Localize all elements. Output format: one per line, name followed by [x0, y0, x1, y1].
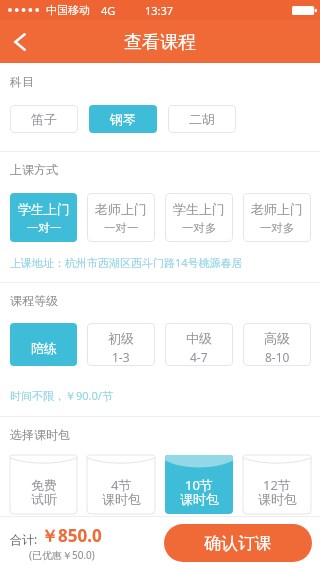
staticText: (已优惠￥50.0) [29, 548, 95, 562]
button[interactable]: 10节 [165, 455, 233, 514]
staticText: 10节 [185, 476, 213, 494]
staticText: 上课地址：杭州市西湖区西斗门路14号桃源春居 [10, 255, 243, 270]
staticText: 一对一 [104, 221, 139, 235]
staticText: 查看课程 [124, 31, 196, 54]
staticText: 一对多 [182, 221, 217, 235]
button[interactable]: 老师上门 [87, 193, 155, 242]
staticText: 13:37 [145, 3, 174, 18]
staticText: 选择课时包 [10, 427, 70, 442]
button[interactable]: 学生上门 [165, 193, 233, 242]
staticText: 陪练 [31, 340, 57, 356]
staticText: 试听 [31, 491, 57, 507]
staticText: 一对一 [27, 221, 62, 235]
button[interactable]: Back [0, 22, 40, 62]
button[interactable]: 学生上门 [10, 193, 77, 242]
staticText: 科目 [10, 74, 34, 89]
button[interactable]: 高级 [243, 323, 311, 366]
staticText: 上课方式 [10, 162, 58, 177]
staticText: 12节 [263, 476, 291, 494]
staticText: 时间不限，￥90.0/节 [10, 388, 113, 403]
staticText: 学生上门 [18, 201, 70, 217]
staticText: 课时包 [258, 491, 297, 507]
staticText: 高级 [264, 330, 290, 346]
staticText: 钢琴 [110, 111, 136, 127]
staticText: 课程等级 [10, 293, 58, 308]
staticText: 1-3 [112, 349, 130, 365]
button[interactable]: 老师上门 [243, 193, 311, 242]
button[interactable]: 笛子 [10, 105, 78, 133]
staticText: 二胡 [189, 111, 215, 127]
button[interactable]: 初级 [87, 323, 155, 366]
staticText: 初级 [108, 330, 134, 346]
button[interactable]: 中级 [165, 323, 233, 366]
staticText: 老师上门 [95, 201, 147, 217]
staticText: 一对多 [260, 221, 295, 235]
staticText: 8-10 [265, 349, 290, 365]
staticText: 学生上门 [173, 201, 225, 217]
staticText: 课时包 [102, 491, 141, 507]
staticText: 4-7 [190, 349, 208, 365]
staticText: 免费 [31, 477, 57, 493]
staticText: 笛子 [31, 111, 57, 127]
staticText: 中国移动 [46, 3, 90, 17]
staticText: 合计: [10, 531, 41, 547]
button[interactable]: 免费 [10, 455, 77, 514]
button[interactable]: 二胡 [168, 105, 236, 133]
staticText: 确认订课 [204, 533, 272, 554]
button[interactable]: 确认订课 [164, 524, 312, 562]
staticText: 4节 [111, 476, 132, 494]
button[interactable]: 12节 [243, 455, 311, 514]
staticText: 中级 [186, 330, 212, 346]
staticText: 课时包 [180, 491, 219, 507]
staticText: 4G [101, 3, 116, 18]
button[interactable]: 钢琴 [89, 105, 157, 133]
staticText: ￥850.0 [41, 524, 102, 547]
button[interactable]: 4节 [87, 455, 155, 514]
staticText: 老师上门 [251, 201, 303, 217]
button[interactable]: 陪练 [10, 323, 77, 366]
